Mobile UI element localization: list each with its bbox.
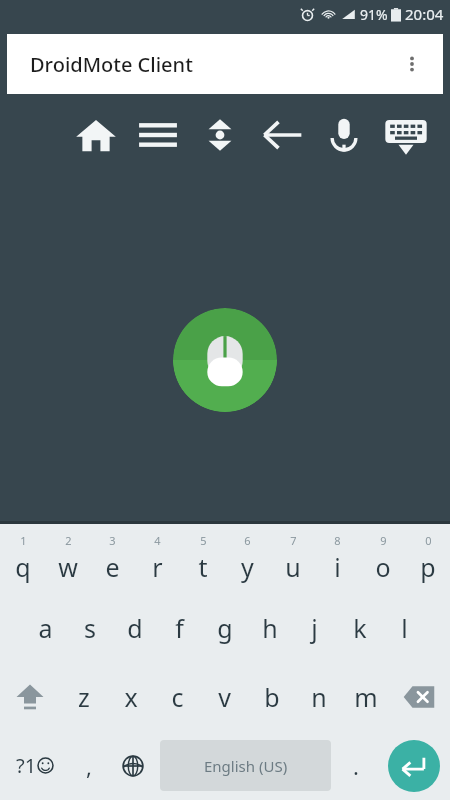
button[interactable]: 0 xyxy=(405,524,450,593)
button[interactable]: Scroll xyxy=(194,109,246,161)
staticText: r xyxy=(152,550,163,584)
button[interactable]: c xyxy=(154,662,201,731)
button[interactable]: 2 xyxy=(45,524,90,593)
button[interactable]: Change language xyxy=(109,731,157,800)
staticText: 9 xyxy=(380,533,387,548)
staticText: p xyxy=(420,550,436,584)
staticText: 3 xyxy=(109,533,116,548)
button[interactable]: Backspace xyxy=(389,662,450,731)
staticText: English (US) xyxy=(204,756,288,776)
button[interactable]: More options xyxy=(395,47,429,81)
button[interactable]: a xyxy=(23,593,67,662)
button[interactable]: h xyxy=(247,593,292,662)
button[interactable]: z xyxy=(60,662,107,731)
staticText: v xyxy=(218,680,231,714)
button[interactable]: , xyxy=(69,731,109,800)
button[interactable]: f xyxy=(157,593,202,662)
button[interactable]: b xyxy=(248,662,295,731)
staticText: 4 xyxy=(154,533,161,548)
staticText: e xyxy=(105,550,120,584)
button[interactable]: English (US) xyxy=(160,740,331,791)
staticText: l xyxy=(401,611,408,645)
button[interactable]: Back xyxy=(256,109,308,161)
button[interactable]: s xyxy=(67,593,112,662)
button[interactable]: d xyxy=(112,593,157,662)
button[interactable]: 1 xyxy=(0,524,45,593)
staticText: t xyxy=(198,550,208,584)
staticText: , xyxy=(86,751,92,781)
button[interactable]: 7 xyxy=(270,524,315,593)
staticText: a xyxy=(38,611,53,645)
staticText: 6 xyxy=(244,533,251,548)
button[interactable]: l xyxy=(382,593,427,662)
staticText: j xyxy=(311,611,318,645)
staticText: i xyxy=(334,550,341,584)
button[interactable]: 3 xyxy=(90,524,135,593)
staticText: z xyxy=(78,680,90,714)
button[interactable]: Mouse pad xyxy=(173,308,277,412)
staticText: 0 xyxy=(425,533,432,548)
button[interactable]: Keyboard xyxy=(380,109,432,161)
button[interactable]: m xyxy=(342,662,389,731)
staticText: 7 xyxy=(290,533,297,548)
staticText: x xyxy=(124,680,138,714)
button[interactable]: Home xyxy=(70,109,122,161)
button[interactable]: ?1 xyxy=(0,731,69,800)
button[interactable]: 6 xyxy=(225,524,270,593)
staticText: m xyxy=(354,680,378,714)
staticText: s xyxy=(84,611,96,645)
staticText: q xyxy=(15,550,31,584)
staticText: 5 xyxy=(200,533,207,548)
button[interactable]: Shift xyxy=(0,662,60,731)
staticText: . xyxy=(353,751,359,781)
staticText: g xyxy=(217,611,233,645)
staticText: f xyxy=(175,611,184,645)
button[interactable]: . xyxy=(334,731,377,800)
staticText: 20:04 xyxy=(405,4,444,24)
staticText: y xyxy=(241,550,254,584)
staticText: h xyxy=(262,611,278,645)
button[interactable]: n xyxy=(295,662,342,731)
staticText: n xyxy=(311,680,327,714)
staticText: w xyxy=(58,550,78,584)
button[interactable]: 9 xyxy=(360,524,405,593)
staticText: d xyxy=(127,611,143,645)
button[interactable]: x xyxy=(107,662,154,731)
button[interactable]: 8 xyxy=(315,524,360,593)
staticText: o xyxy=(375,550,391,584)
staticText: 91% xyxy=(360,5,388,24)
button[interactable]: DroidMote Client xyxy=(7,34,443,94)
button[interactable]: Enter xyxy=(388,740,440,792)
staticText: 1 xyxy=(20,533,27,548)
staticText: b xyxy=(264,680,280,714)
button[interactable]: 5 xyxy=(180,524,225,593)
button[interactable]: Voice input xyxy=(318,109,370,161)
staticText: c xyxy=(171,680,184,714)
button[interactable]: j xyxy=(292,593,337,662)
button[interactable]: g xyxy=(202,593,247,662)
staticText: 2 xyxy=(65,533,72,548)
staticText: u xyxy=(285,550,301,584)
button[interactable]: 4 xyxy=(135,524,180,593)
staticText: 8 xyxy=(334,533,341,548)
staticText: ?1 xyxy=(16,752,37,779)
button[interactable]: k xyxy=(337,593,382,662)
button[interactable]: Menu xyxy=(132,109,184,161)
staticText: DroidMote Client xyxy=(30,51,193,78)
staticText: k xyxy=(353,611,367,645)
button[interactable]: v xyxy=(201,662,248,731)
